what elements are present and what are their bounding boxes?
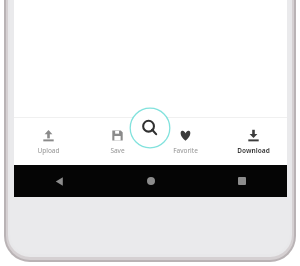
button[interactable]: Home [105, 165, 196, 197]
button[interactable]: Recents [196, 165, 287, 197]
staticText: Save [110, 146, 125, 155]
button[interactable]: Favorite [151, 122, 219, 161]
staticText: Favorite [173, 146, 198, 155]
button[interactable]: Search [128, 106, 172, 150]
button[interactable]: Download [219, 122, 287, 161]
staticText: Download [237, 146, 270, 155]
button[interactable]: Save [83, 122, 151, 161]
button[interactable]: Back [14, 165, 105, 197]
staticText: Upload [37, 146, 60, 155]
button[interactable]: Upload [14, 122, 83, 161]
